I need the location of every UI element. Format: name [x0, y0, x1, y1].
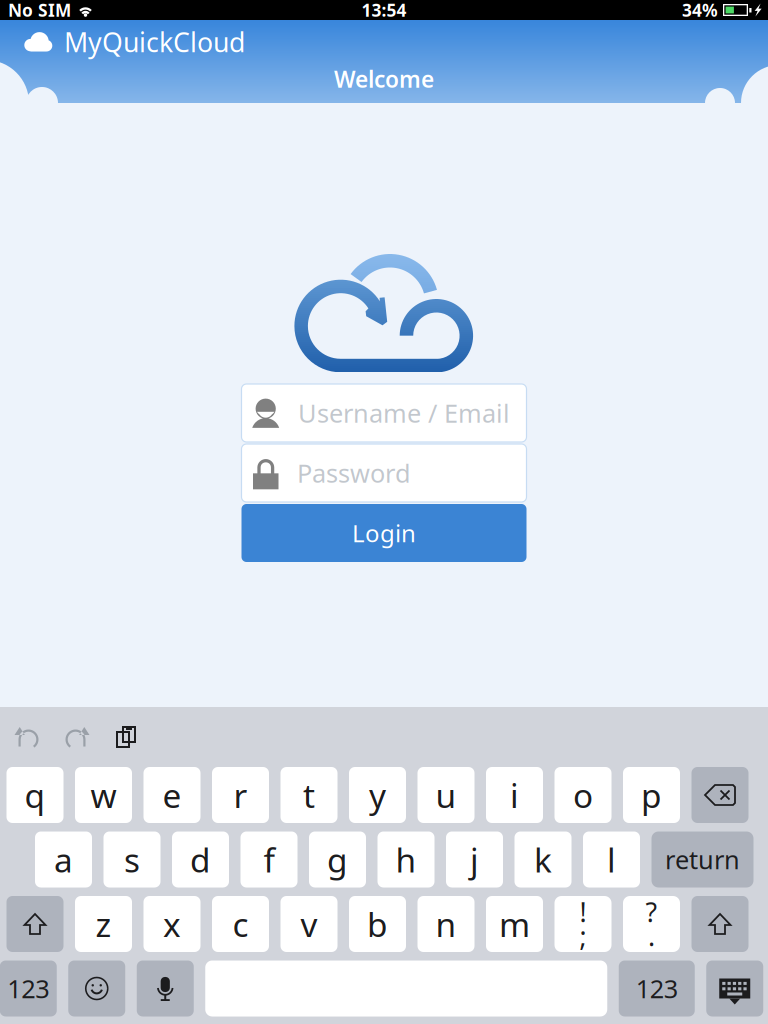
button[interactable]: e [143, 767, 200, 823]
staticText: g [327, 837, 348, 882]
staticText: 123 [7, 972, 49, 1005]
button[interactable]: m [486, 896, 543, 952]
button[interactable]: x [143, 896, 200, 952]
button[interactable]: f [240, 831, 297, 887]
button[interactable]: Login [241, 504, 526, 562]
staticText: 13:54 [361, 0, 406, 21]
staticText: t [303, 773, 315, 817]
button[interactable]: Hide keyboard [706, 960, 763, 1016]
button[interactable]: k [514, 831, 571, 887]
staticText: v [300, 902, 317, 946]
staticText: Login [352, 517, 416, 549]
button[interactable]: i [486, 767, 543, 823]
button[interactable]: return [651, 831, 753, 887]
button[interactable]: Delete [691, 767, 748, 823]
button[interactable]: g [309, 831, 366, 887]
button[interactable]: u [417, 767, 474, 823]
staticText: y [369, 773, 386, 817]
staticText: l [607, 837, 616, 882]
button[interactable]: r [212, 767, 269, 823]
button[interactable]: Redo [60, 724, 92, 750]
staticText: b [367, 902, 388, 946]
button[interactable]: z [75, 896, 132, 952]
staticText: j [470, 837, 479, 882]
button[interactable]: h [377, 831, 434, 887]
button[interactable]: n [417, 896, 474, 952]
staticText: n [435, 902, 456, 946]
button[interactable]: Space [205, 960, 607, 1016]
staticText: Welcome [334, 64, 434, 94]
staticText: c [232, 902, 248, 946]
button[interactable]: c [212, 896, 269, 952]
button[interactable]: v [280, 896, 337, 952]
staticText: d [190, 837, 211, 882]
staticText: k [534, 837, 552, 882]
staticText: s [124, 837, 140, 882]
staticText: m [499, 902, 530, 946]
staticText: return [665, 843, 740, 876]
button[interactable]: Username or Email [241, 384, 526, 442]
button[interactable]: 123 [619, 960, 695, 1016]
staticText: 34% [682, 0, 718, 21]
staticText: z [95, 902, 111, 946]
button[interactable]: p [623, 767, 680, 823]
button[interactable]: b [349, 896, 406, 952]
button[interactable]: 123 [0, 960, 57, 1016]
staticText: MyQuickCloud [64, 24, 245, 60]
button[interactable]: ! [554, 896, 611, 952]
staticText: h [395, 837, 416, 882]
staticText: q [24, 773, 45, 817]
staticText: ! [579, 894, 586, 930]
button[interactable]: Shift [6, 896, 63, 952]
staticText: i [510, 773, 519, 817]
staticText: . [648, 918, 655, 954]
button[interactable]: s [103, 831, 160, 887]
button[interactable]: d [172, 831, 229, 887]
staticText: x [163, 902, 181, 946]
button[interactable]: Paste [110, 724, 142, 750]
staticText: Username / Email [298, 396, 510, 430]
staticText: a [54, 837, 73, 882]
staticText: f [263, 837, 274, 882]
staticText: o [573, 773, 593, 817]
button[interactable]: y [349, 767, 406, 823]
staticText: No SIM [8, 0, 71, 21]
button[interactable]: Dictation [137, 960, 194, 1016]
button[interactable]: q [6, 767, 63, 823]
button[interactable]: a [35, 831, 92, 887]
staticText: ? [645, 894, 657, 930]
staticText: Password [297, 456, 411, 490]
button[interactable]: l [583, 831, 640, 887]
staticText: ; [579, 918, 586, 954]
staticText: r [233, 773, 247, 817]
button[interactable]: t [280, 767, 337, 823]
staticText: 123 [636, 972, 678, 1005]
button[interactable]: Password [241, 444, 526, 502]
staticText: e [162, 773, 181, 817]
staticText: w [90, 773, 116, 817]
button[interactable]: Emoji keyboard [68, 960, 125, 1016]
button[interactable]: Shift [691, 896, 748, 952]
button[interactable]: ? [623, 896, 680, 952]
button[interactable]: o [554, 767, 611, 823]
button[interactable]: j [446, 831, 503, 887]
button[interactable]: w [75, 767, 132, 823]
button[interactable]: Undo [12, 724, 44, 750]
staticText: u [435, 773, 456, 817]
staticText: p [641, 773, 662, 817]
